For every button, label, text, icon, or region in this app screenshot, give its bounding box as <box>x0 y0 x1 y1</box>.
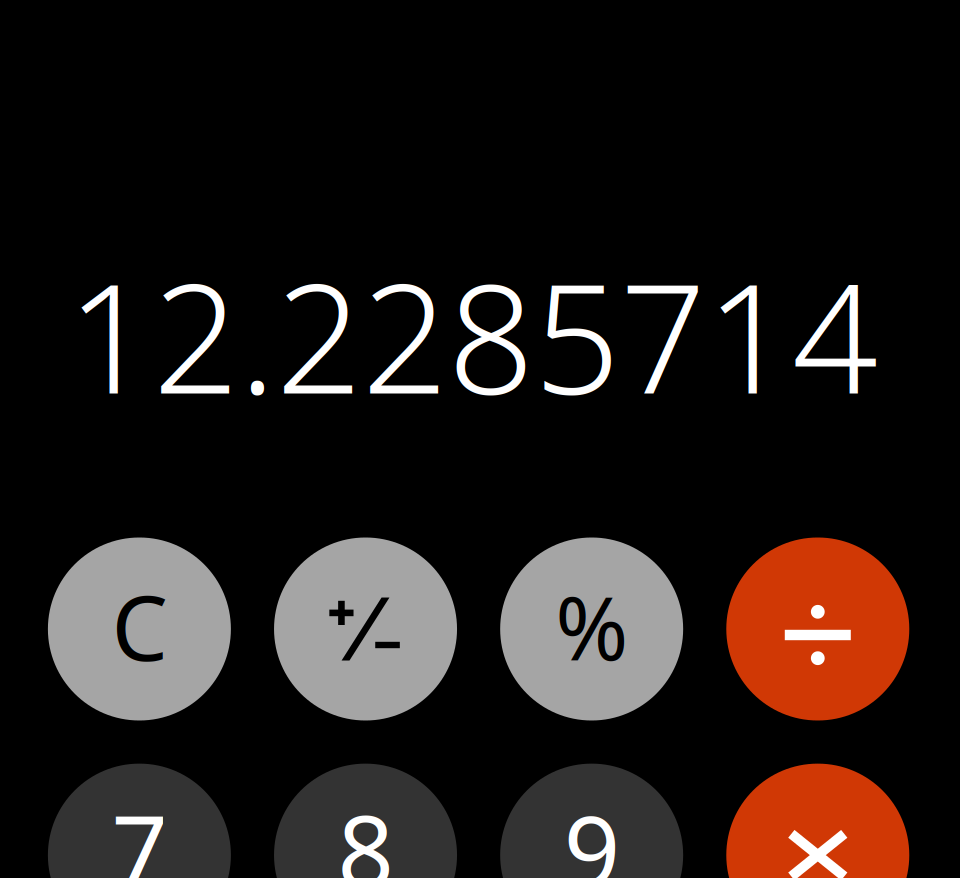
staticText: 12.2285714 <box>67 235 878 435</box>
button[interactable]: % <box>500 537 683 720</box>
button[interactable]: Multiply <box>726 764 909 878</box>
button[interactable]: Divide <box>726 537 909 720</box>
staticText: 7 <box>111 784 167 878</box>
button[interactable]: C <box>48 537 231 720</box>
button[interactable]: Toggle sign <box>274 537 457 720</box>
staticText: % <box>555 568 628 684</box>
staticText: 8 <box>337 784 393 878</box>
staticText: C <box>111 567 167 685</box>
button[interactable]: 7 <box>48 764 231 878</box>
button[interactable]: 8 <box>274 764 457 878</box>
button[interactable]: 9 <box>500 764 683 878</box>
staticText: 9 <box>564 784 620 878</box>
